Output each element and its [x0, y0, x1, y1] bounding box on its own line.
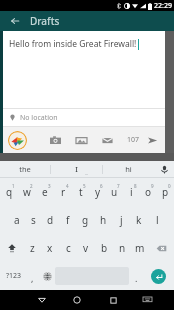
- button[interactable]: a: [8, 206, 25, 234]
- staticText: b: [101, 241, 108, 255]
- button[interactable]: x: [41, 234, 59, 262]
- button[interactable]: .: [129, 262, 144, 290]
- button[interactable]: ?123: [2, 262, 25, 290]
- staticText: No location: [20, 113, 58, 123]
- staticText: ···: [85, 172, 89, 177]
- staticText: 1: [12, 183, 15, 189]
- staticText: I: [75, 164, 78, 174]
- button[interactable]: g: [76, 206, 94, 234]
- staticText: d: [47, 213, 54, 227]
- staticText: j: [120, 213, 123, 227]
- button[interactable]: Recent apps: [95, 290, 131, 310]
- button[interactable]: I: [51, 161, 102, 177]
- staticText: n: [119, 241, 126, 255]
- staticText: a: [14, 213, 20, 227]
- button[interactable]: c: [59, 234, 77, 262]
- button[interactable]: hi: [103, 161, 154, 177]
- staticText: Hello from inside Great Firewall!: [9, 38, 137, 50]
- button[interactable]: ,: [25, 262, 40, 290]
- button[interactable]: i: [123, 178, 140, 206]
- button[interactable]: d: [42, 206, 59, 234]
- button[interactable]: No location: [3, 109, 165, 126]
- staticText: c: [66, 241, 71, 255]
- button[interactable]: Gallery: [73, 132, 89, 148]
- staticText: k: [136, 213, 142, 227]
- staticText: 4: [66, 183, 69, 189]
- staticText: m: [135, 241, 145, 255]
- button[interactable]: Shift: [0, 234, 24, 262]
- button[interactable]: t: [72, 178, 89, 206]
- staticText: h: [100, 213, 107, 227]
- button[interactable]: e: [36, 178, 54, 206]
- staticText: v: [83, 241, 89, 255]
- staticText: r: [61, 185, 66, 199]
- staticText: hi: [125, 164, 132, 174]
- staticText: p: [162, 185, 169, 199]
- button[interactable]: Hide keyboard: [131, 290, 163, 310]
- staticText: ?123: [6, 271, 22, 281]
- staticText: .: [135, 272, 138, 284]
- button[interactable]: Backspace: [149, 234, 174, 262]
- button[interactable]: Attach: [99, 132, 115, 148]
- button[interactable]: b: [95, 234, 113, 262]
- button[interactable]: u: [106, 178, 123, 206]
- staticText: 6: [100, 183, 103, 189]
- staticText: g: [82, 213, 89, 227]
- button[interactable]: Back: [24, 290, 59, 310]
- staticText: f: [66, 213, 70, 227]
- staticText: 8: [134, 183, 137, 189]
- button[interactable]: s: [25, 206, 42, 234]
- staticText: 22:29: [154, 1, 172, 11]
- button[interactable]: l: [148, 206, 166, 234]
- staticText: x: [47, 241, 53, 255]
- button[interactable]: Camera: [47, 132, 63, 148]
- button[interactable]: r: [54, 178, 72, 206]
- button[interactable]: Home: [59, 290, 95, 310]
- staticText: 2: [30, 183, 33, 189]
- button[interactable]: m: [131, 234, 149, 262]
- button[interactable]: k: [130, 206, 148, 234]
- button[interactable]: h: [94, 206, 112, 234]
- staticText: 107: [127, 135, 140, 145]
- button[interactable]: f: [59, 206, 76, 234]
- staticText: ,: [31, 272, 34, 284]
- other: Backspace: [149, 234, 174, 262]
- button[interactable]: Voice input: [154, 161, 174, 177]
- button[interactable]: Account: [8, 131, 27, 150]
- other: Shift: [0, 234, 24, 262]
- staticText: w: [23, 185, 31, 199]
- staticText: u: [111, 185, 118, 199]
- staticText: 7: [117, 183, 120, 189]
- button[interactable]: o: [140, 178, 157, 206]
- staticText: q: [6, 185, 13, 199]
- staticText: 3: [48, 183, 51, 189]
- button[interactable]: p: [157, 178, 174, 206]
- staticText: l: [156, 213, 159, 227]
- staticText: s: [31, 213, 36, 227]
- button[interactable]: Enter: [144, 264, 172, 288]
- staticText: t: [79, 185, 83, 199]
- button[interactable]: y: [89, 178, 106, 206]
- button[interactable]: w: [18, 178, 36, 206]
- button[interactable]: z: [24, 234, 41, 262]
- button[interactable]: Send: [144, 132, 160, 148]
- staticText: 0: [168, 183, 171, 189]
- button[interactable]: v: [77, 234, 95, 262]
- staticText: the: [19, 164, 31, 174]
- staticText: z: [30, 241, 35, 255]
- staticText: 5: [83, 183, 86, 189]
- button[interactable]: Back: [0, 11, 30, 31]
- button[interactable]: n: [113, 234, 131, 262]
- button[interactable]: Change language: [40, 262, 55, 290]
- staticText: o: [145, 185, 152, 199]
- staticText: e: [42, 185, 48, 199]
- staticText: Drafts: [30, 14, 60, 28]
- staticText: y: [95, 185, 101, 199]
- button[interactable]: the: [0, 161, 50, 177]
- button[interactable]: j: [112, 206, 130, 234]
- staticText: 9: [151, 183, 154, 189]
- staticText: i: [130, 185, 133, 199]
- button[interactable]: q: [0, 178, 18, 206]
